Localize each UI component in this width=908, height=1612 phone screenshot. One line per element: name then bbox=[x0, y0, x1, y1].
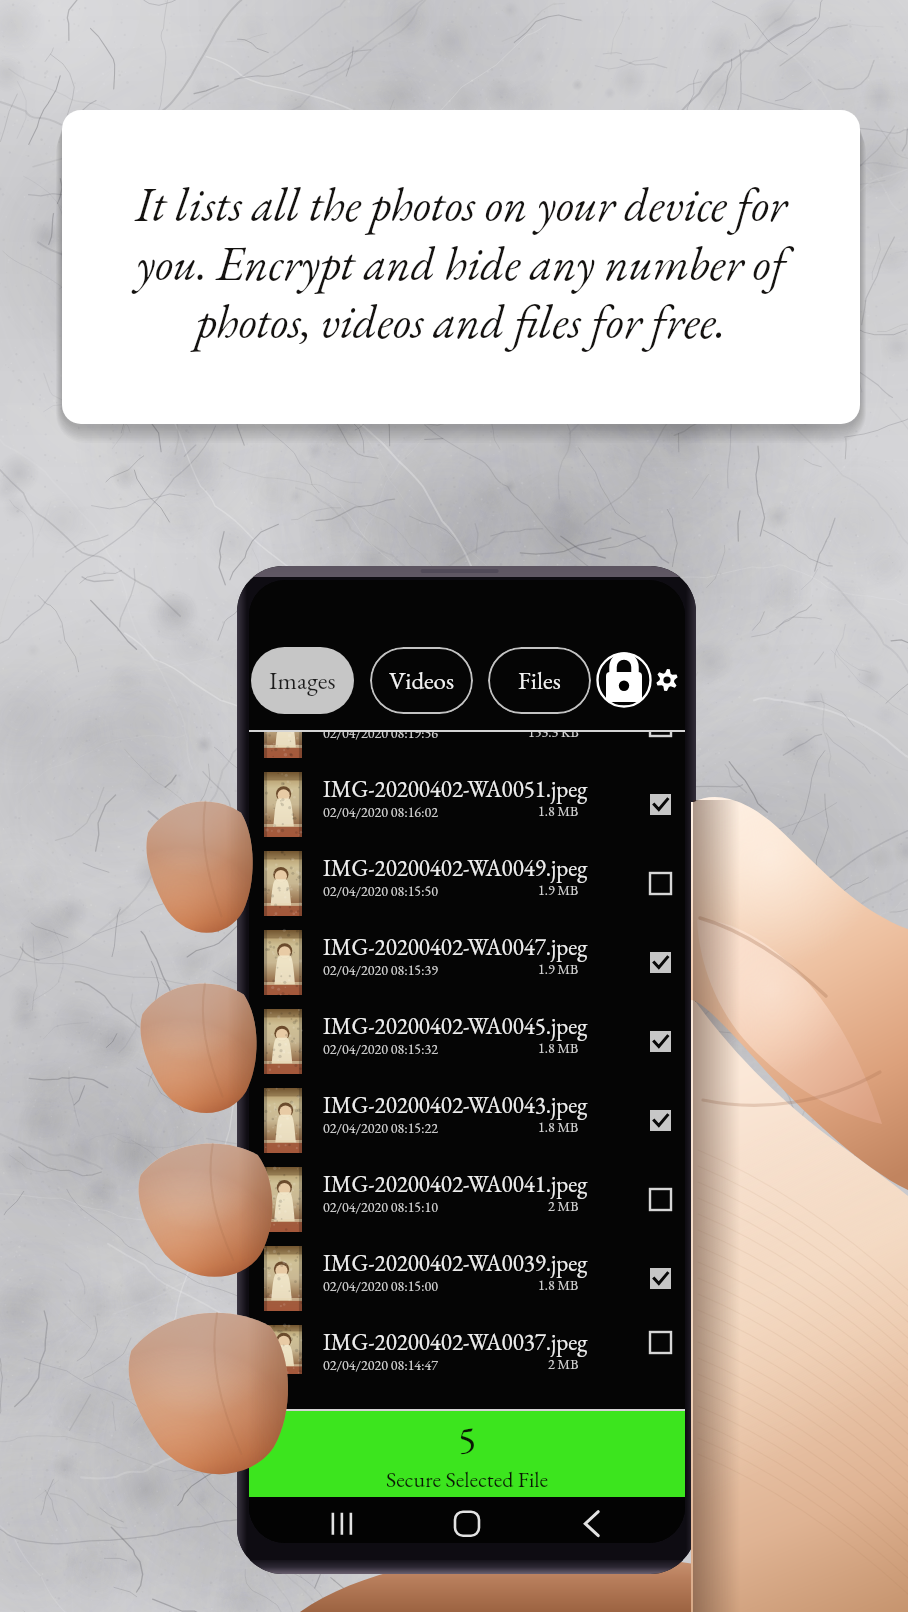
staticText: 02/04/2020 08:14:47 bbox=[323, 1356, 438, 1374]
button[interactable]: IMG-20200402-WA0041.jpeg bbox=[249, 1160, 685, 1239]
staticText: 02/04/2020 08:19:56 bbox=[323, 730, 438, 742]
staticText: 5 bbox=[458, 1415, 477, 1465]
button[interactable]: 5 bbox=[249, 1411, 685, 1497]
button[interactable]: IMG-20200402-WA0045.jpeg bbox=[249, 1002, 685, 1081]
button[interactable]: Select IMG-20200402-WA0053.jpg bbox=[635, 730, 685, 765]
staticText: 02/04/2020 08:15:00 bbox=[323, 1277, 438, 1295]
staticText: 02/04/2020 08:15:22 bbox=[323, 1119, 438, 1137]
staticText: Files bbox=[518, 664, 561, 697]
button[interactable]: Select IMG-20200402-WA0051.jpeg bbox=[635, 765, 685, 844]
staticText: 1.9 MB bbox=[538, 881, 579, 899]
button[interactable]: Images bbox=[251, 647, 354, 714]
button[interactable]: IMG-20200402-WA0039.jpeg bbox=[249, 1239, 685, 1318]
button[interactable]: IMG-20200402-WA0053.jpg bbox=[249, 730, 685, 765]
staticText: 02/04/2020 08:15:39 bbox=[323, 961, 438, 979]
staticText: It lists all the photos on your device f… bbox=[116, 174, 806, 352]
staticText: 2 MB bbox=[548, 1197, 579, 1215]
button[interactable]: Files bbox=[488, 647, 591, 714]
button[interactable]: Select IMG-20200402-WA0043.jpeg bbox=[635, 1081, 685, 1160]
staticText: 1.8 MB bbox=[538, 802, 579, 820]
button[interactable]: Select IMG-20200402-WA0037.jpeg bbox=[635, 1318, 685, 1367]
button[interactable]: Select IMG-20200402-WA0047.jpeg bbox=[635, 923, 685, 1002]
staticText: 2 MB bbox=[548, 1355, 579, 1373]
staticText: IMG-20200402-WA0043.jpeg bbox=[323, 1090, 588, 1120]
button[interactable]: Select IMG-20200402-WA0049.jpeg bbox=[635, 844, 685, 923]
staticText: Secure Selected File bbox=[386, 1465, 549, 1494]
staticText: IMG-20200402-WA0039.jpeg bbox=[323, 1248, 588, 1278]
button[interactable]: IMG-20200402-WA0049.jpeg bbox=[249, 844, 685, 923]
staticText: Videos bbox=[389, 664, 455, 697]
staticText: 02/04/2020 08:15:50 bbox=[323, 882, 438, 900]
button[interactable]: IMG-20200402-WA0047.jpeg bbox=[249, 923, 685, 1002]
staticText: 153.3 KB bbox=[528, 730, 579, 741]
button[interactable]: Select IMG-20200402-WA0041.jpeg bbox=[635, 1160, 685, 1239]
button[interactable]: IMG-20200402-WA0037.jpeg bbox=[249, 1318, 685, 1367]
staticText: Images bbox=[269, 664, 336, 697]
button[interactable]: Select IMG-20200402-WA0045.jpeg bbox=[635, 1002, 685, 1081]
staticText: 02/04/2020 08:15:32 bbox=[323, 1040, 438, 1058]
button[interactable]: Videos bbox=[370, 647, 473, 714]
staticText: 1.9 MB bbox=[538, 960, 579, 978]
button[interactable]: IMG-20200402-WA0043.jpeg bbox=[249, 1081, 685, 1160]
staticText: IMG-20200402-WA0045.jpeg bbox=[323, 1011, 588, 1041]
staticText: IMG-20200402-WA0051.jpeg bbox=[323, 774, 588, 804]
staticText: IMG-20200402-WA0037.jpeg bbox=[323, 1327, 588, 1357]
staticText: 02/04/2020 08:15:10 bbox=[323, 1198, 438, 1216]
staticText: 1.8 MB bbox=[538, 1039, 579, 1057]
staticText: IMG-20200402-WA0049.jpeg bbox=[323, 853, 588, 883]
button[interactable]: Select IMG-20200402-WA0039.jpeg bbox=[635, 1239, 685, 1318]
button[interactable]: Lock bbox=[596, 652, 652, 708]
staticText: 1.8 MB bbox=[538, 1276, 579, 1294]
staticText: IMG-20200402-WA0047.jpeg bbox=[323, 932, 588, 962]
staticText: 02/04/2020 08:16:02 bbox=[323, 803, 438, 821]
button[interactable]: IMG-20200402-WA0051.jpeg bbox=[249, 765, 685, 844]
button[interactable]: Settings bbox=[652, 665, 682, 695]
staticText: 1.8 MB bbox=[538, 1118, 579, 1136]
staticText: IMG-20200402-WA0041.jpeg bbox=[323, 1169, 588, 1199]
